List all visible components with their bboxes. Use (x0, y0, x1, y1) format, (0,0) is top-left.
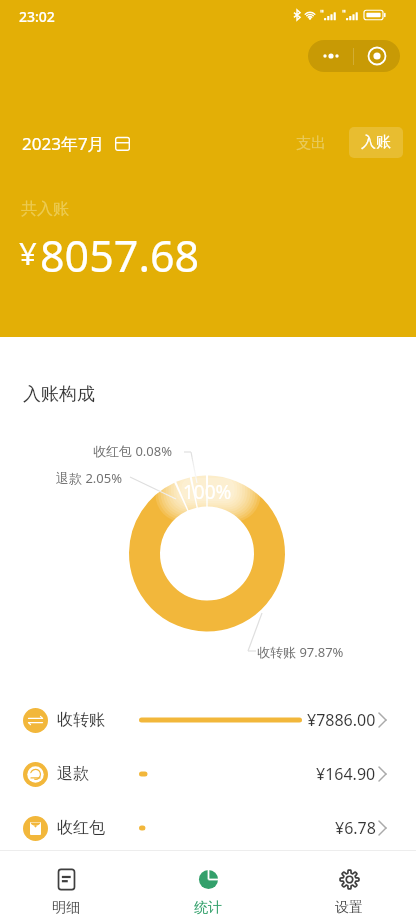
staticText: ¥6.78 (335, 817, 376, 839)
staticText: 退款 2.05% (56, 469, 122, 487)
button[interactable]: More options (308, 40, 353, 72)
staticText: 2023年7月 (22, 132, 105, 155)
staticText: 8057.68 (40, 226, 200, 285)
button[interactable]: 收转账 (0, 693, 416, 747)
staticText: 入账 (361, 133, 391, 152)
button[interactable]: Screen recorder (354, 40, 400, 72)
staticText: 23:02 (19, 7, 55, 26)
button[interactable]: 设置 (288, 850, 410, 922)
staticText: 收转账 (57, 710, 105, 730)
staticText: 支出 (296, 134, 326, 153)
staticText: 收红包 (57, 818, 105, 838)
staticText: 设置 (335, 899, 363, 917)
staticText: 入账构成 (23, 383, 95, 406)
button[interactable]: 明细 (5, 850, 127, 922)
staticText: ¥ (19, 232, 37, 274)
staticText: 收转账 97.87% (257, 643, 344, 661)
staticText: 收红包 0.08% (93, 442, 172, 460)
button[interactable]: 支出 (288, 126, 334, 160)
staticText: 共入账 (21, 199, 69, 219)
staticText: 退款 (57, 764, 89, 784)
button[interactable]: 退款 (0, 747, 416, 801)
staticText: 统计 (194, 899, 222, 917)
staticText: 100% (183, 479, 232, 505)
button[interactable]: 收红包 (0, 801, 416, 855)
staticText: ¥164.90 (316, 763, 376, 785)
button[interactable]: 入账 (349, 127, 403, 158)
staticText: ¥7886.00 (307, 709, 376, 731)
button[interactable]: 统计 (147, 850, 269, 922)
staticText: 明细 (52, 899, 80, 917)
button[interactable]: 2023年7月 (22, 126, 130, 160)
